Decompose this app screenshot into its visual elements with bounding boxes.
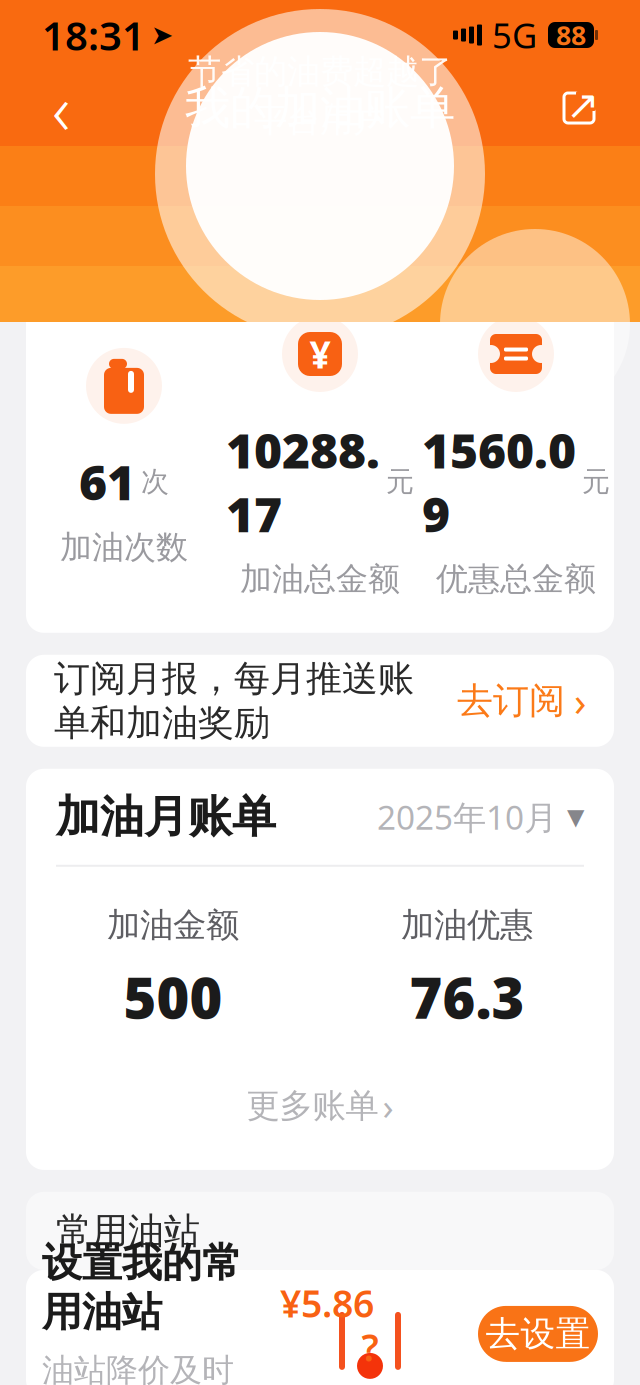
staticText: 88 (556, 17, 586, 53)
staticText: ‹ (52, 62, 70, 154)
staticText: 加油月账单 (56, 790, 276, 844)
staticText: 2025年10月 (377, 795, 557, 839)
staticText: ▼ (567, 804, 584, 830)
button[interactable]: 2025年10月 (377, 795, 584, 839)
staticText: 61 (79, 450, 135, 514)
staticText: 去设置 (485, 1313, 590, 1355)
staticText: 去订阅 (457, 679, 565, 723)
staticText: › (574, 674, 586, 727)
staticText: 我的加油账单 (185, 80, 455, 136)
staticText: 5G (492, 12, 537, 58)
staticText: 18:31 (42, 8, 145, 61)
staticText: 元 (582, 464, 610, 499)
button[interactable]: 订阅月报，每月推送账单和加油奖励 (0, 655, 640, 747)
staticText: › (382, 1082, 393, 1130)
staticText: 1560.09 (422, 418, 576, 545)
staticText: 500 (123, 960, 222, 1034)
button[interactable]: 分享 (544, 73, 614, 143)
button[interactable]: 更多账单 (26, 1034, 614, 1170)
staticText: 加油优惠 (401, 905, 533, 946)
staticText: 节省的油费超越了 (188, 51, 452, 92)
staticText: 10288.17 (226, 418, 380, 545)
staticText: 订阅月报，每月推送账单和加油奖励 (54, 657, 414, 745)
staticText: 加油总金额 (240, 559, 400, 599)
staticText: ➤ (151, 20, 173, 50)
staticText: 元 (386, 464, 414, 499)
staticText: 优惠总金额 (436, 559, 596, 599)
staticText: 更多账单 (246, 1085, 378, 1126)
staticText: 76.3 (409, 960, 524, 1034)
staticText: 加油金额 (107, 905, 239, 946)
staticText: ¥5.86 (280, 1278, 374, 1328)
staticText: 加油次数 (60, 528, 188, 567)
staticText: 油站降价及时提醒 (42, 1351, 234, 1385)
staticText: 设置我的常用油站 (42, 1238, 242, 1337)
button[interactable]: 返回 (26, 73, 96, 143)
staticText: ↗ (566, 82, 600, 128)
staticText: 次 (141, 464, 169, 499)
staticText: ¥ (309, 329, 330, 379)
button[interactable]: 去设置 (478, 1306, 598, 1362)
staticText: 常用油站 (56, 1209, 200, 1253)
staticText: ? (361, 1322, 378, 1372)
